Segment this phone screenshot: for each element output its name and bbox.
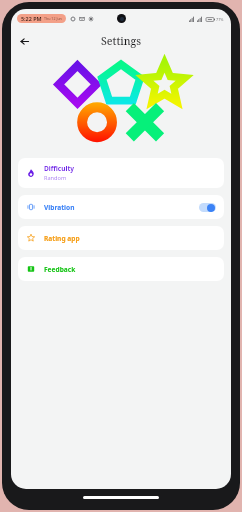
staticText: 77% — [216, 17, 224, 22]
button[interactable]: Rating app — [18, 226, 224, 250]
button[interactable]: Vibration toggle — [199, 203, 216, 212]
button[interactable]: Vibration — [18, 195, 224, 219]
button[interactable]: Back — [15, 32, 33, 50]
staticText: Vibration — [44, 203, 75, 212]
button[interactable]: Feedback — [18, 257, 224, 281]
staticText: Feedback — [44, 265, 76, 274]
staticText: Thu 12 Jun — [44, 16, 62, 21]
button[interactable]: Difficulty — [18, 158, 224, 188]
staticText: Rating app — [44, 234, 80, 243]
staticText: Difficulty — [44, 164, 75, 173]
staticText: Settings — [101, 34, 142, 48]
staticText: 5:22 PM — [21, 15, 42, 22]
staticText: Random — [44, 174, 67, 182]
